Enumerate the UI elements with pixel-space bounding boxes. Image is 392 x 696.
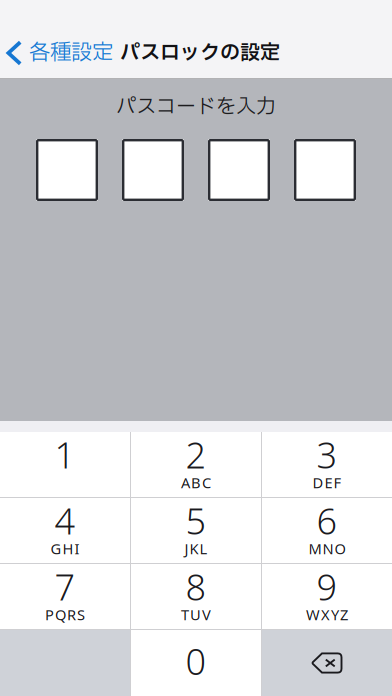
button[interactable]: 各種設定 [0, 27, 120, 79]
staticText: 9 [316, 563, 337, 610]
staticText: 7 [54, 563, 75, 610]
button[interactable]: 5 [131, 498, 261, 563]
staticText: 8 [185, 563, 206, 610]
staticText: 4 [54, 497, 75, 544]
button[interactable]: 6 [262, 498, 392, 563]
button[interactable]: 2 [131, 432, 261, 497]
staticText: M N O [308, 539, 345, 558]
staticText: D E F [312, 473, 341, 492]
staticText: 0 [185, 637, 206, 685]
staticText: 5 [185, 497, 206, 544]
button[interactable]: 0 [131, 630, 261, 696]
button[interactable]: 3 [262, 432, 392, 497]
button[interactable]: 8 [131, 564, 261, 629]
staticText: パスコードを入力 [116, 92, 276, 122]
staticText: 6 [316, 497, 337, 544]
staticText: 2 [185, 431, 206, 478]
button[interactable]: Delete [262, 630, 392, 696]
staticText: W X Y Z [306, 605, 348, 624]
staticText: T U V [181, 605, 211, 624]
staticText: 3 [316, 431, 337, 478]
staticText: A B C [181, 473, 211, 492]
staticText: 各種設定 [29, 37, 113, 69]
button[interactable]: 4 [0, 498, 130, 563]
button[interactable]: 1 [0, 432, 130, 497]
staticText: G H I [50, 539, 79, 558]
staticText: 1 [54, 431, 75, 478]
staticText: P Q R S [45, 605, 85, 624]
staticText: J K L [184, 539, 207, 558]
button[interactable]: 9 [262, 564, 392, 629]
button[interactable]: 7 [0, 564, 130, 629]
staticText: パスロックの設定 [120, 38, 280, 68]
